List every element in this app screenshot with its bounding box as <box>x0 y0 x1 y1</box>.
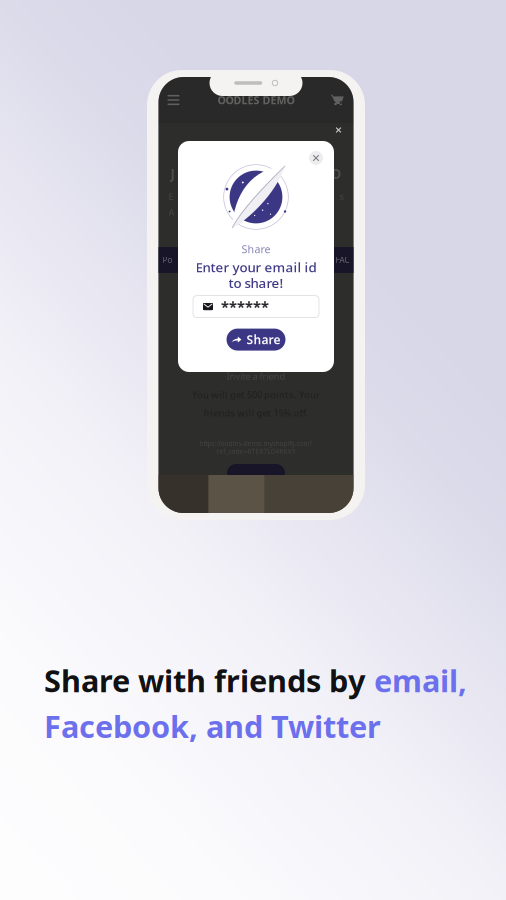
staticText: Po <box>162 255 172 265</box>
button[interactable]: Share <box>226 329 285 351</box>
staticText: Enter your email id <box>195 258 316 276</box>
button[interactable]: Menu <box>163 90 183 110</box>
staticText: email, <box>374 660 467 701</box>
staticText: ****** <box>221 297 269 316</box>
button[interactable]: Dismiss <box>327 119 349 141</box>
staticText: friends will get 15% off. <box>203 407 308 419</box>
staticText: Share <box>241 242 270 256</box>
staticText: You will get 500 points. Your <box>192 388 320 401</box>
staticText: Share <box>247 332 281 347</box>
button[interactable]: Cart <box>326 90 348 110</box>
staticText: Facebook, and Twitter <box>44 706 381 746</box>
staticText: Invite a friend <box>226 370 285 382</box>
staticText: to share! <box>228 274 283 292</box>
staticText: D <box>331 165 341 183</box>
staticText: Share with friends by <box>44 660 374 701</box>
staticText: A <box>168 206 174 218</box>
staticText: ref_code=6TE87LO4K6X9 <box>216 447 295 456</box>
staticText: FAC <box>335 255 349 265</box>
staticText: J <box>170 165 174 183</box>
staticText: E <box>168 190 173 202</box>
staticText: OODLES DEMO <box>217 93 294 107</box>
button[interactable]: Close <box>309 141 334 165</box>
staticText: s <box>339 190 343 202</box>
staticText: https://oodles-demo.myshopify.com? <box>199 439 312 448</box>
